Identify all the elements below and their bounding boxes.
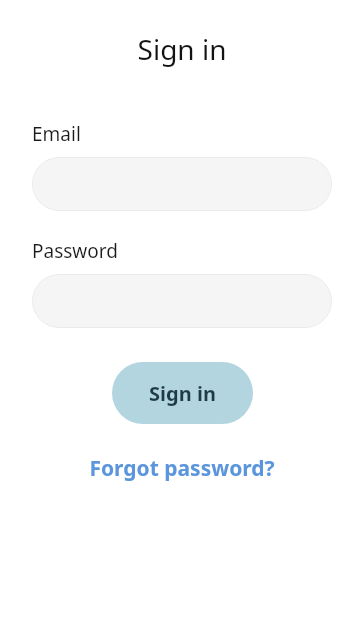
button[interactable]: Forgot password? (0, 437, 364, 499)
staticText: Sign in (0, 30, 364, 68)
button[interactable]: Sign in (112, 362, 253, 424)
staticText: Email (32, 121, 81, 147)
staticText: Sign in (149, 380, 216, 407)
staticText: Forgot password? (0, 454, 364, 483)
staticText: Password (32, 238, 118, 264)
